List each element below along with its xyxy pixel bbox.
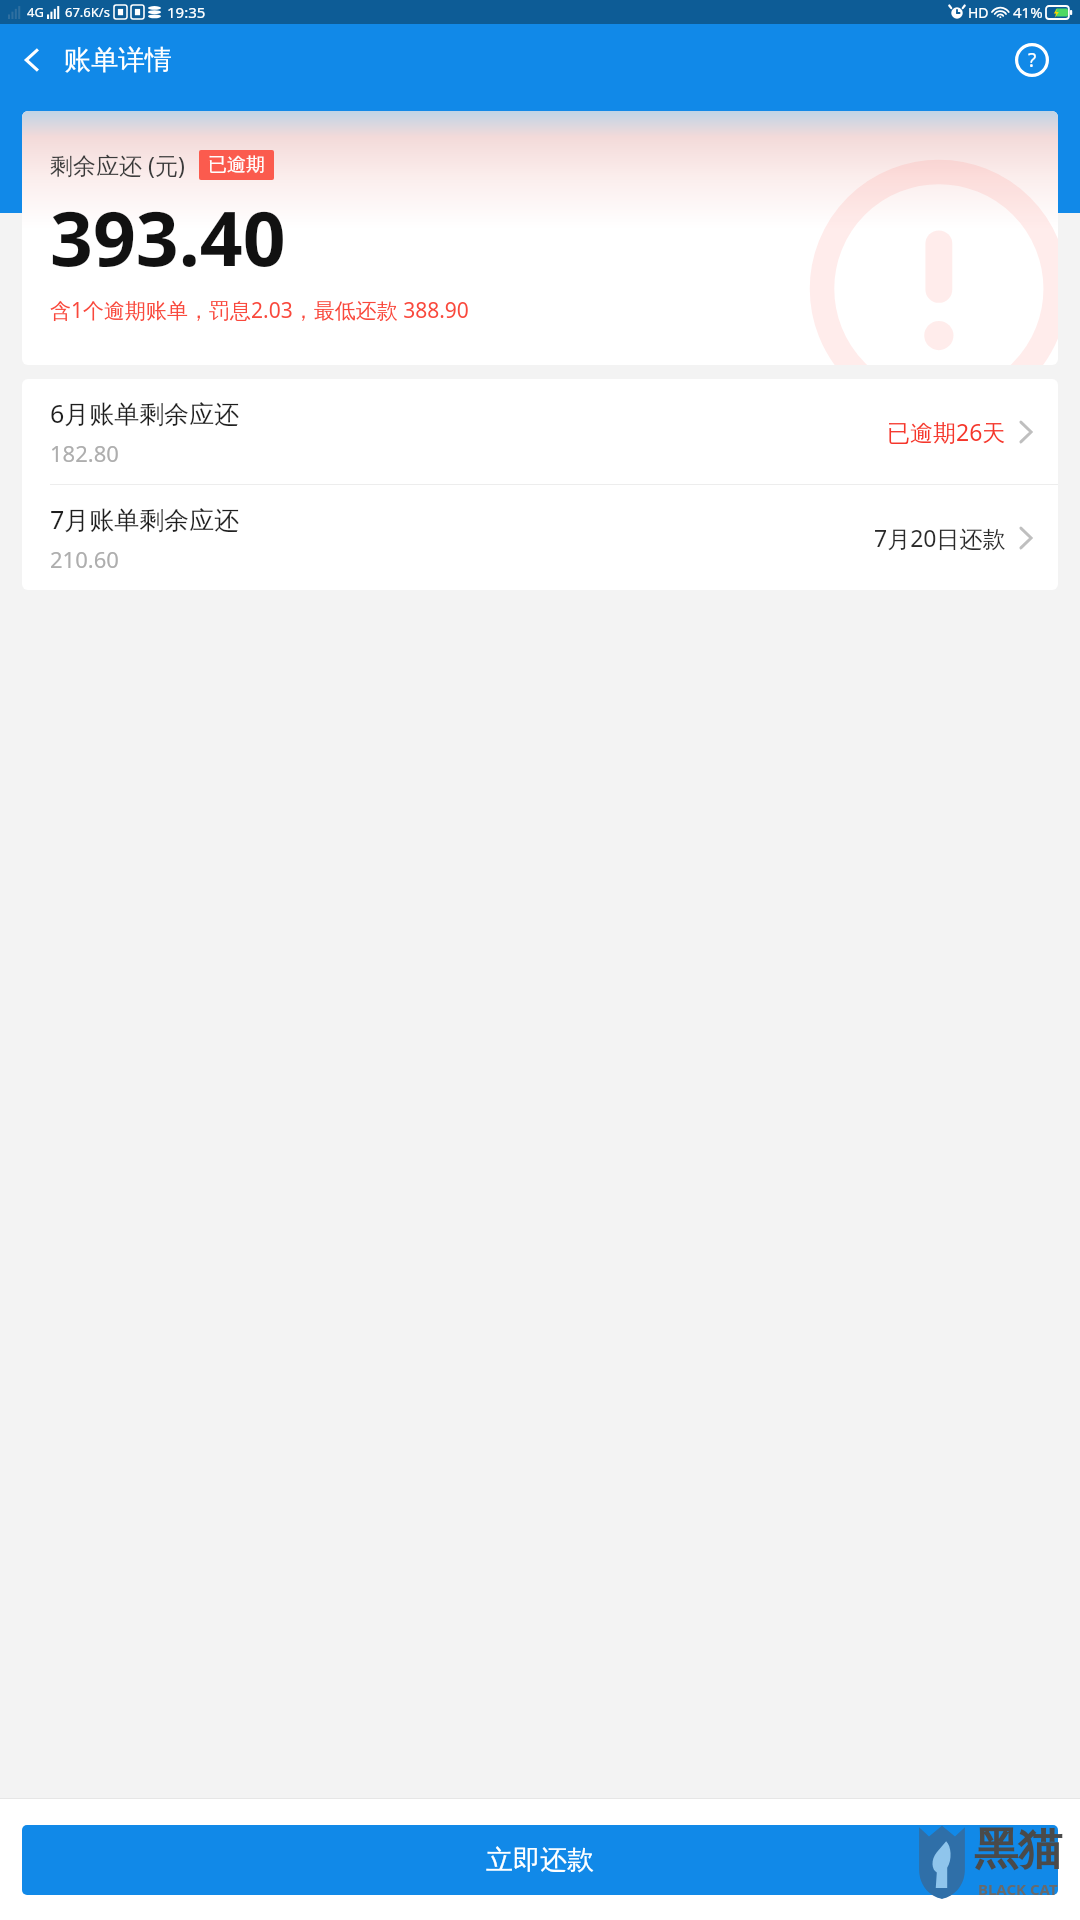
staticText: 7月20日还款 <box>874 522 1006 553</box>
staticText: 黑猫 <box>974 1822 1062 1877</box>
button[interactable]: Back <box>6 34 58 86</box>
staticText: 已逾期26天 <box>887 416 1006 447</box>
button[interactable]: Help <box>1006 34 1058 86</box>
staticText: 19:35 <box>167 2 206 22</box>
button[interactable]: 立即还款 <box>22 1825 1058 1895</box>
staticText: HD <box>968 3 989 22</box>
staticText: 210.60 <box>50 544 119 574</box>
staticText: 含1个逾期账单，罚息2.03，最低还款 388.90 <box>50 296 819 325</box>
staticText: 6月账单剩余应还 <box>50 396 240 430</box>
staticText: 41% <box>1013 2 1043 22</box>
staticText: 7月账单剩余应还 <box>50 502 240 536</box>
staticText: 182.80 <box>50 438 119 468</box>
staticText: 已逾期 <box>208 153 265 177</box>
staticText: 4G <box>27 3 44 21</box>
button[interactable]: 6月账单剩余应还 <box>22 379 1058 484</box>
button[interactable]: 7月账单剩余应还 <box>22 485 1058 590</box>
staticText: 393.40 <box>50 186 286 288</box>
staticText: 67.6K/s <box>65 3 110 21</box>
staticText: 账单详情 <box>64 43 172 77</box>
staticText: 立即还款 <box>486 1843 594 1877</box>
staticText: BLACK CAT <box>978 1879 1058 1899</box>
staticText: 剩余应还 (元) <box>50 149 185 180</box>
staticText: ? <box>1028 47 1037 73</box>
